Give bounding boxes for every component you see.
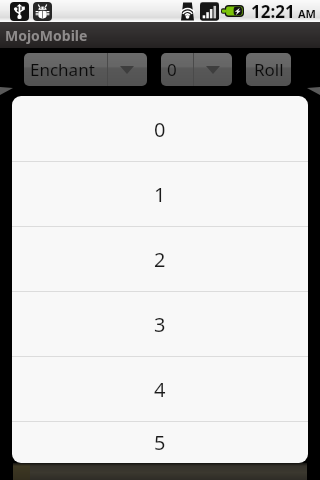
- button[interactable]: 4: [12, 357, 308, 421]
- staticText: 0: [167, 58, 177, 81]
- staticText: AM: [298, 6, 316, 21]
- button[interactable]: 5: [12, 422, 308, 463]
- button[interactable]: 0: [161, 53, 232, 86]
- staticText: 12:21: [251, 0, 295, 22]
- button[interactable]: 0: [12, 97, 308, 161]
- staticText: 4: [154, 376, 166, 403]
- staticText: 2: [154, 246, 166, 273]
- button[interactable]: 3: [12, 292, 308, 356]
- staticText: Roll: [254, 58, 284, 81]
- staticText: Enchant: [30, 58, 95, 81]
- button[interactable]: Enchant: [24, 53, 147, 86]
- button[interactable]: Roll: [246, 53, 291, 86]
- staticText: 0: [154, 116, 166, 143]
- staticText: MojoMobile: [5, 26, 88, 45]
- button[interactable]: 1: [12, 162, 308, 226]
- button[interactable]: 2: [12, 227, 308, 291]
- staticText: 3: [154, 311, 166, 338]
- staticText: 5: [154, 429, 166, 456]
- staticText: 1: [154, 181, 166, 208]
